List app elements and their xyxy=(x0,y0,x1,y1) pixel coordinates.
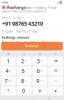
staticText: ⚙ xyxy=(7,52,9,55)
staticText: ▪ xyxy=(55,89,57,92)
staticText: DEF xyxy=(40,60,43,62)
staticText: +91 98765 43210 xyxy=(2,20,43,27)
button[interactable]: 7 xyxy=(1,76,16,85)
staticText: Recharge xyxy=(7,5,26,10)
button[interactable]: 8 xyxy=(16,76,32,85)
staticText: ◀ xyxy=(15,97,16,99)
button[interactable]: 4 xyxy=(1,66,16,76)
staticText: ⌫ xyxy=(54,60,58,63)
staticText: 9 xyxy=(36,77,39,84)
button[interactable]: 3 xyxy=(32,56,47,66)
button[interactable]: ▪ xyxy=(48,86,63,95)
staticText: 5 xyxy=(21,67,24,74)
button[interactable]: ⌫ xyxy=(48,56,63,66)
staticText: OK xyxy=(54,69,58,73)
staticText: ■ xyxy=(48,97,49,99)
staticText: PQRS xyxy=(8,80,12,82)
staticText: Recharge xyxy=(25,44,39,48)
staticText: ●●● xyxy=(2,1,8,4)
staticText: # xyxy=(38,88,41,93)
staticText: 8 xyxy=(21,77,24,84)
staticText: Prepaid · Validity 28 days xyxy=(2,30,37,33)
button[interactable]: 9 xyxy=(32,76,47,85)
button[interactable]: 5 xyxy=(16,66,32,76)
button[interactable]: Recharge xyxy=(1,42,63,50)
button[interactable]: OK xyxy=(48,66,63,76)
staticText: 7 xyxy=(5,77,8,84)
staticText: + xyxy=(25,90,26,92)
staticText: Recharge amount xyxy=(2,36,29,39)
staticText: ··· xyxy=(54,79,57,83)
staticText: ABC xyxy=(24,60,27,62)
staticText: ▲▮█ xyxy=(57,1,62,4)
staticText: Mobile number xyxy=(2,16,24,20)
button[interactable]: # xyxy=(32,86,47,95)
staticText: MNO xyxy=(40,70,43,72)
staticText: TUV xyxy=(24,80,27,82)
staticText: 3 xyxy=(37,57,40,65)
button[interactable]: 0 xyxy=(16,86,32,95)
staticText: Enter the value you wish to add to your … xyxy=(2,40,57,47)
staticText: 0 xyxy=(22,87,25,94)
staticText: ↻ xyxy=(55,52,57,55)
button[interactable]: ··· xyxy=(48,76,63,85)
staticText: * xyxy=(7,88,9,93)
staticText: WXYZ xyxy=(40,80,44,82)
button[interactable]: 2 xyxy=(16,56,32,66)
button[interactable]: 6 xyxy=(32,66,47,76)
staticText: 6 xyxy=(37,67,40,74)
staticText: 1 xyxy=(7,57,10,65)
staticText: ◎ xyxy=(23,52,25,55)
staticText: ☺ xyxy=(38,52,41,55)
button[interactable]: * xyxy=(1,86,16,95)
button[interactable]: 1 xyxy=(1,56,16,66)
staticText: Recharge your number instantly. Pick an … xyxy=(2,6,57,13)
staticText: 4 xyxy=(6,67,9,74)
staticText: JKL xyxy=(25,70,27,72)
staticText: 2 xyxy=(21,57,24,65)
